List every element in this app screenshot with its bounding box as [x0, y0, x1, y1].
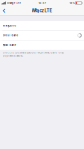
- button[interactable]: Back: [0, 6, 8, 15]
- staticText: Głos i dane: [2, 34, 17, 37]
- staticText: 16:37: [38, 1, 45, 5]
- staticText: Wyłączone: [2, 24, 15, 27]
- button[interactable]: Tylko dane: [0, 40, 84, 50]
- staticText: Tylko dane: [2, 44, 15, 47]
- staticText: 18%: [69, 1, 74, 5]
- staticText: Orange: [7, 1, 15, 5]
- button[interactable]: Wyłączone: [0, 21, 84, 30]
- button[interactable]: Głos i dane: [0, 31, 84, 40]
- staticText: Sieć LTE pozwala szybciej wczytywać dane…: [3, 51, 64, 57]
- staticText: Włącz LTE: [31, 8, 52, 13]
- staticText: LTE: [16, 1, 21, 5]
